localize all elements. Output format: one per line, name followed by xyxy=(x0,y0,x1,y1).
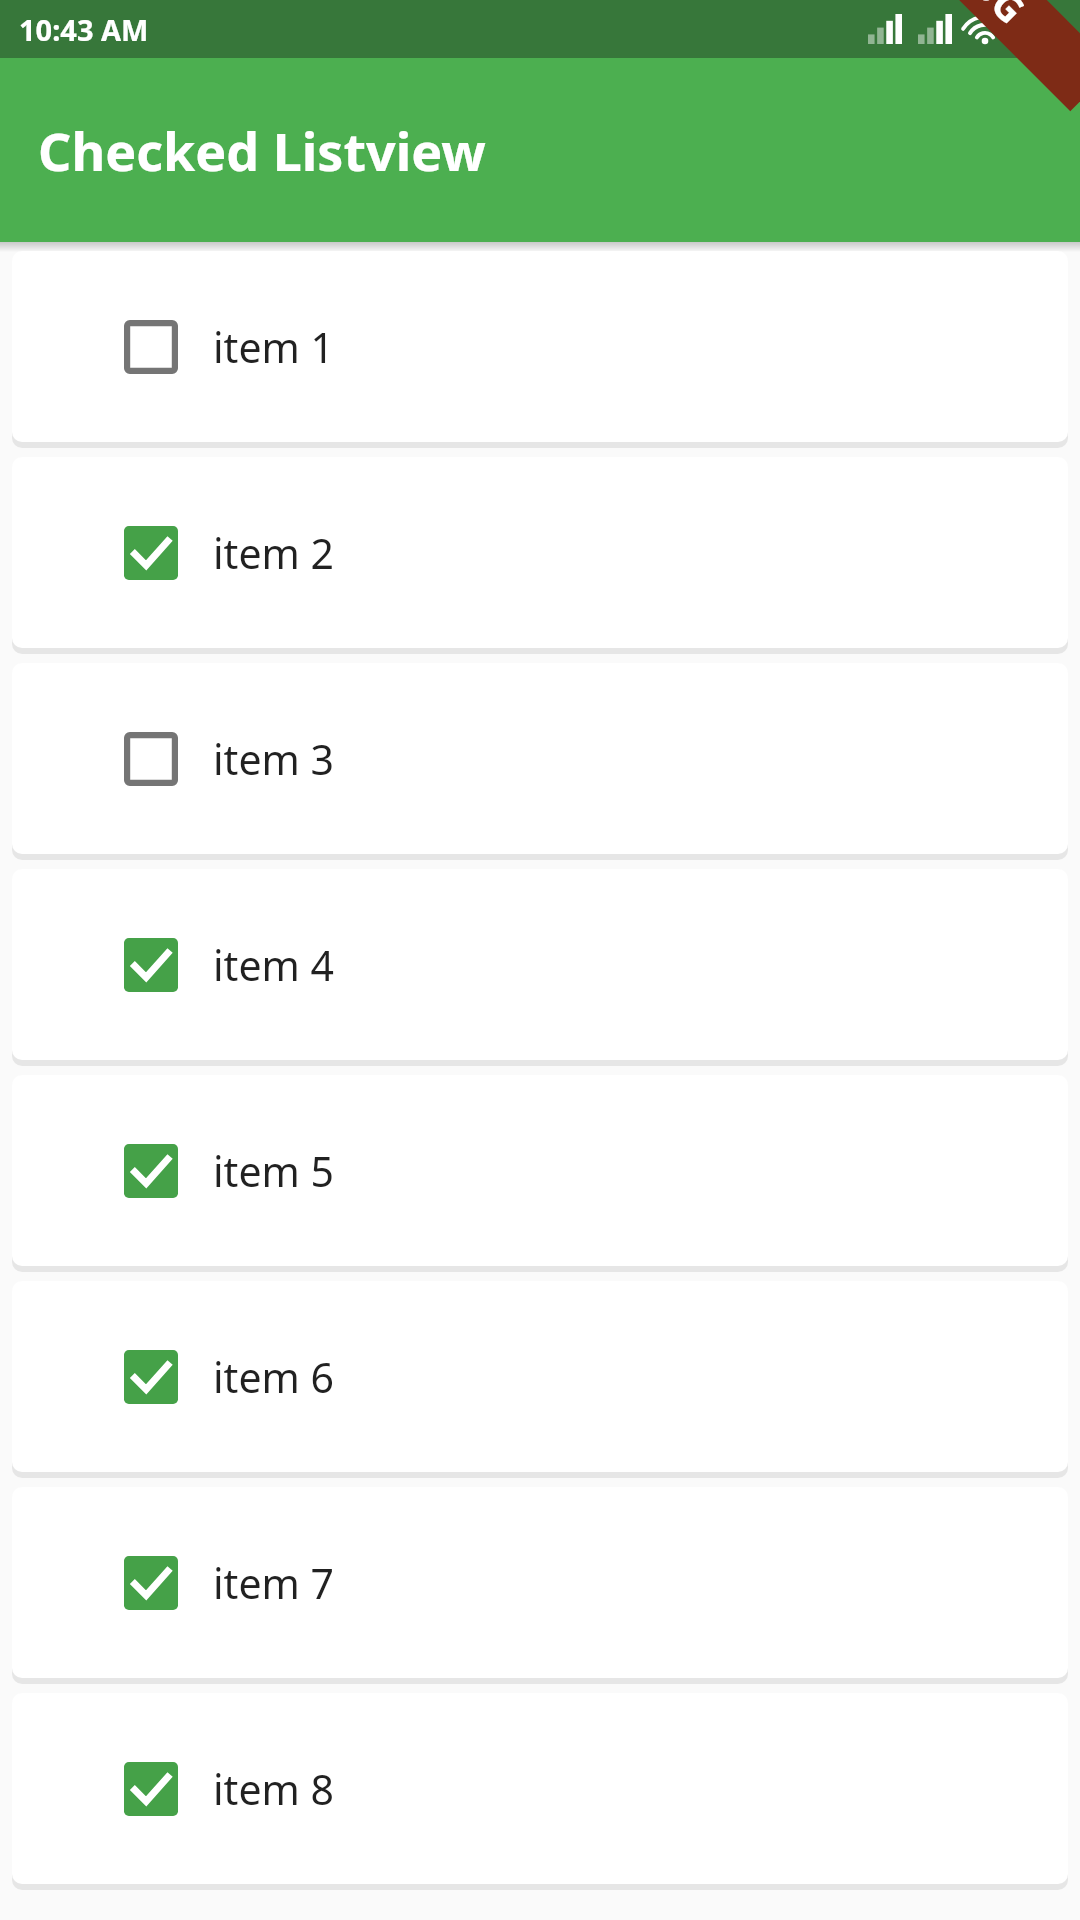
button[interactable]: Checked xyxy=(12,1487,1068,1678)
button[interactable]: Checked xyxy=(12,457,1068,648)
staticText: item 8 xyxy=(213,1761,334,1817)
button[interactable]: Checked xyxy=(124,1350,178,1404)
staticText: item 3 xyxy=(213,731,334,787)
button[interactable]: Checked xyxy=(124,1144,178,1198)
button[interactable]: Unchecked xyxy=(12,251,1068,442)
staticText: Checked Listview xyxy=(38,115,486,186)
button[interactable]: Checked xyxy=(12,1281,1068,1472)
staticText: item 1 xyxy=(213,319,334,375)
button[interactable]: Checked xyxy=(12,1075,1068,1266)
staticText: item 4 xyxy=(213,937,334,993)
staticText: item 6 xyxy=(213,1349,334,1405)
staticText: item 7 xyxy=(213,1555,334,1611)
button[interactable]: Checked xyxy=(12,869,1068,1060)
button[interactable]: Checked xyxy=(124,1556,178,1610)
button[interactable]: Checked xyxy=(124,1762,178,1816)
button[interactable]: Unchecked xyxy=(124,732,178,786)
button[interactable]: Unchecked xyxy=(124,320,178,374)
button[interactable]: Checked xyxy=(124,938,178,992)
staticText: 10:43 AM xyxy=(19,10,149,49)
staticText: item 5 xyxy=(213,1143,334,1199)
button[interactable]: Checked xyxy=(12,1693,1068,1884)
staticText: DEBUG xyxy=(908,0,1037,34)
button[interactable]: Checked xyxy=(124,526,178,580)
staticText: item 2 xyxy=(213,525,334,581)
button[interactable]: Unchecked xyxy=(12,663,1068,854)
